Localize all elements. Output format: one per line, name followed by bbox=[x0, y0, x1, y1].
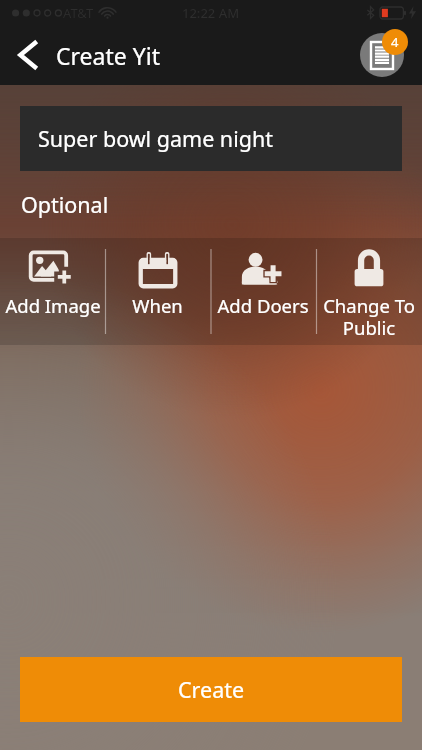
staticText: 12:22 AM bbox=[182, 4, 240, 22]
button[interactable]: Add Doers bbox=[210, 238, 316, 318]
staticText: AT&T bbox=[63, 4, 94, 22]
staticText: 4 bbox=[391, 33, 399, 51]
button[interactable]: Change To Public bbox=[316, 238, 422, 341]
staticText: Optional bbox=[21, 190, 109, 219]
staticText: Super bowl game night bbox=[38, 124, 273, 153]
staticText: When bbox=[132, 293, 183, 318]
button[interactable]: Drafts bbox=[359, 32, 405, 78]
staticText: Add Image bbox=[5, 293, 101, 318]
button[interactable]: Add Image bbox=[0, 238, 105, 318]
staticText: Create Yit bbox=[56, 40, 160, 71]
staticText: Change To Public bbox=[316, 293, 422, 341]
button[interactable]: When bbox=[105, 238, 210, 318]
staticText: Add Doers bbox=[217, 293, 309, 318]
staticText: Create bbox=[178, 675, 245, 704]
button[interactable]: Super bowl game night bbox=[20, 106, 402, 171]
button[interactable]: Back bbox=[0, 27, 56, 83]
button[interactable]: Create bbox=[20, 657, 402, 722]
